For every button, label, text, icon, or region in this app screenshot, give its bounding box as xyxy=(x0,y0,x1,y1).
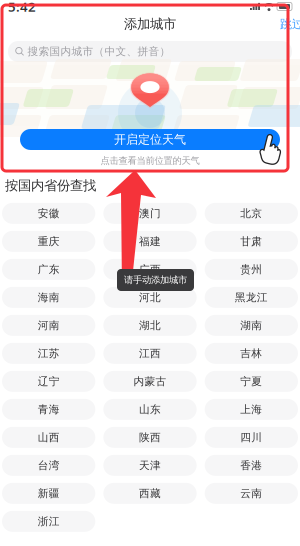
staticText: 江苏 xyxy=(38,347,60,360)
staticText: 按国内省份查找 xyxy=(5,177,96,194)
staticText: 云南 xyxy=(240,487,262,500)
staticText: 搜索国内城市（中文、拼音） xyxy=(27,45,170,58)
staticText: 澳门 xyxy=(139,207,161,220)
button[interactable]: 云南 xyxy=(205,483,298,504)
button[interactable]: 安徽 xyxy=(2,203,95,224)
button[interactable]: 搜索国内城市（中文、拼音） xyxy=(8,41,292,62)
staticText: 宁夏 xyxy=(240,375,262,388)
button[interactable]: 吉林 xyxy=(205,343,298,364)
staticText: 台湾 xyxy=(38,459,60,472)
staticText: 西藏 xyxy=(139,487,161,500)
staticText: 添加城市 xyxy=(124,16,176,32)
button[interactable]: 台湾 xyxy=(2,455,95,476)
staticText: 新疆 xyxy=(38,487,60,500)
staticText: 甘肃 xyxy=(240,235,262,248)
staticText: 吉林 xyxy=(240,347,262,360)
staticText: 福建 xyxy=(139,235,161,248)
button[interactable]: 海南 xyxy=(2,287,95,308)
staticText: 河南 xyxy=(38,319,60,332)
staticText: 天津 xyxy=(139,459,161,472)
button[interactable]: 辽宁 xyxy=(2,371,95,392)
staticText: 辽宁 xyxy=(38,375,60,388)
button[interactable]: 福建 xyxy=(103,231,197,252)
button[interactable]: 青海 xyxy=(2,399,95,420)
button[interactable]: 广东 xyxy=(2,259,95,280)
button[interactable]: 北京 xyxy=(205,203,298,224)
staticText: 青海 xyxy=(38,403,60,416)
staticText: 开启定位天气 xyxy=(114,132,186,147)
button[interactable]: 山东 xyxy=(103,399,197,420)
button[interactable]: 黑龙江 xyxy=(205,287,298,308)
staticText: 陕西 xyxy=(139,431,161,444)
button[interactable]: 湖北 xyxy=(103,315,197,336)
staticText: 内蒙古 xyxy=(133,375,166,388)
staticText: 河北 xyxy=(139,291,161,304)
button[interactable]: 河北 xyxy=(103,287,197,308)
button[interactable]: 山西 xyxy=(2,427,95,448)
staticText: 重庆 xyxy=(38,235,60,248)
button[interactable]: 宁夏 xyxy=(205,371,298,392)
staticText: 广西 xyxy=(139,263,161,276)
button[interactable]: 跳过 xyxy=(276,13,300,35)
staticText: 山东 xyxy=(139,403,161,416)
staticText: 香港 xyxy=(240,459,262,472)
staticText: 跳过 xyxy=(280,17,300,31)
button[interactable]: 新疆 xyxy=(2,483,95,504)
staticText: 湖南 xyxy=(240,319,262,332)
staticText: 黑龙江 xyxy=(235,291,268,304)
staticText: 山西 xyxy=(38,431,60,444)
button[interactable]: Tap xyxy=(260,133,284,167)
button[interactable]: 陕西 xyxy=(103,427,197,448)
button[interactable]: 江苏 xyxy=(2,343,95,364)
staticText: 贵州 xyxy=(240,263,262,276)
staticText: 请手动添加城市 xyxy=(124,274,187,286)
button[interactable]: 香港 xyxy=(205,455,298,476)
button[interactable]: 天津 xyxy=(103,455,197,476)
button[interactable]: 开启定位天气 xyxy=(20,129,280,150)
staticText: 上海 xyxy=(240,403,262,416)
staticText: 安徽 xyxy=(38,207,60,220)
staticText: 湖北 xyxy=(139,319,161,332)
staticText: 5:42 xyxy=(8,0,36,15)
button[interactable]: 浙江 xyxy=(2,511,95,532)
staticText: 江西 xyxy=(139,347,161,360)
button[interactable]: 澳门 xyxy=(103,203,197,224)
staticText: 海南 xyxy=(38,291,60,304)
button[interactable]: 湖南 xyxy=(205,315,298,336)
button[interactable]: 河南 xyxy=(2,315,95,336)
button[interactable]: 甘肃 xyxy=(205,231,298,252)
button[interactable]: 贵州 xyxy=(205,259,298,280)
staticText: 北京 xyxy=(240,207,262,220)
button[interactable]: 上海 xyxy=(205,399,298,420)
staticText: 四川 xyxy=(240,431,262,444)
button[interactable]: 广西 xyxy=(103,259,197,280)
button[interactable]: 江西 xyxy=(103,343,197,364)
button[interactable]: 重庆 xyxy=(2,231,95,252)
button[interactable]: 内蒙古 xyxy=(103,371,197,392)
button[interactable]: 西藏 xyxy=(103,483,197,504)
staticText: 点击查看当前位置的天气 xyxy=(100,155,199,166)
staticText: 浙江 xyxy=(38,515,60,528)
staticText: 广东 xyxy=(38,263,60,276)
button[interactable]: 四川 xyxy=(205,427,298,448)
